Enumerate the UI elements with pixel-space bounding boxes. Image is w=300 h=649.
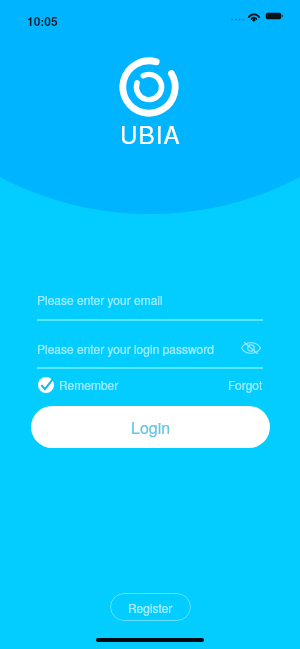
staticText: Please enter your email xyxy=(37,291,163,308)
staticText: Remember xyxy=(59,376,119,393)
button[interactable]: Login xyxy=(31,406,270,448)
staticText: Login xyxy=(131,416,171,439)
button[interactable]: Show password xyxy=(239,336,263,360)
button[interactable]: Register xyxy=(110,593,191,621)
button[interactable]: Forgot xyxy=(228,376,263,393)
button[interactable]: Remember xyxy=(38,376,119,393)
staticText: Please enter your login password xyxy=(37,340,214,357)
staticText: Forgot xyxy=(228,376,263,393)
staticText: Register xyxy=(128,599,173,616)
staticText: 10:05 xyxy=(27,12,58,29)
staticText: UBIA xyxy=(120,116,181,150)
